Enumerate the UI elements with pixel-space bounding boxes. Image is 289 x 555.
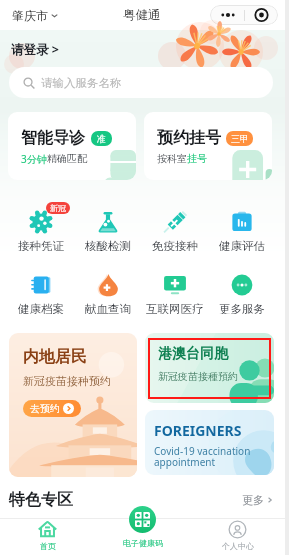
staticText: 特色专区 [9,490,73,510]
staticText: 请登录 > [11,41,59,58]
staticText: 接种凭证 [18,239,64,251]
button[interactable]: 预约挂号 [144,112,272,180]
staticText: 献血查询 [85,302,131,314]
staticText: 粤健通 [123,7,161,23]
button[interactable]: 个人中心 [190,518,285,555]
staticText: 首页 [40,541,56,551]
button[interactable]: 首页 [0,518,95,555]
staticText: 免疫接种 [152,239,198,251]
staticText: 电子健康码 [123,538,163,548]
button[interactable]: 电子健康码 [95,518,190,555]
button[interactable]: 港澳台同胞 [145,333,274,403]
staticText: 新冠疫苗接种预约 [23,374,111,388]
staticText: 新冠 [50,203,66,213]
staticText: 内地居民 [23,347,87,367]
staticText: 精确匹配 [47,152,87,165]
staticText: 核酸检测 [85,239,131,251]
button[interactable]: 接种凭证 [7,207,74,251]
staticText: 更多 [242,493,264,507]
button[interactable]: 内地居民 [9,333,137,477]
staticText: 新冠疫苗接種預約 [158,370,238,383]
button[interactable]: 献血查询 [74,270,141,314]
staticText: 预约挂号 [157,128,221,148]
staticText: 港澳台同胞 [158,345,228,363]
staticText: 挂号 [187,152,207,165]
button[interactable]: More options [210,5,278,25]
button[interactable]: 健康评估 [208,207,275,251]
button[interactable]: 健康档案 [7,270,74,314]
button[interactable]: 互联网医疗 [141,270,208,314]
staticText: 智能导诊 [21,128,85,148]
staticText: 更多服务 [219,302,265,314]
button[interactable]: 智能导诊 [8,112,136,180]
staticText: 请输入服务名称 [41,76,122,90]
staticText: 三甲 [231,133,249,144]
staticText: 按科室 [157,152,187,165]
staticText: 准 [97,133,106,144]
staticText: 去预约 [30,402,60,415]
button[interactable]: 核酸检测 [74,207,141,251]
staticText: 健康档案 [18,302,64,314]
button[interactable]: 免疫接种 [141,207,208,251]
button[interactable]: 更多服务 [208,270,275,314]
staticText: 3分钟 [21,152,47,166]
button[interactable]: 请登录 > [11,41,59,58]
button[interactable]: 肇庆市 [12,0,58,30]
button[interactable]: FOREIGNERS [145,410,274,475]
button[interactable]: 更多 [242,493,274,507]
staticText: FOREIGNERS [154,421,242,440]
button[interactable]: 请输入服务名称 [9,67,273,98]
staticText: 肇庆市 [12,8,48,23]
staticText: 健康评估 [219,239,265,251]
button[interactable]: 去预约 [30,400,74,417]
staticText: 互联网医疗 [146,302,204,314]
staticText: 个人中心 [222,541,254,551]
staticText: Covid-19 vaccination appointment [154,444,251,469]
